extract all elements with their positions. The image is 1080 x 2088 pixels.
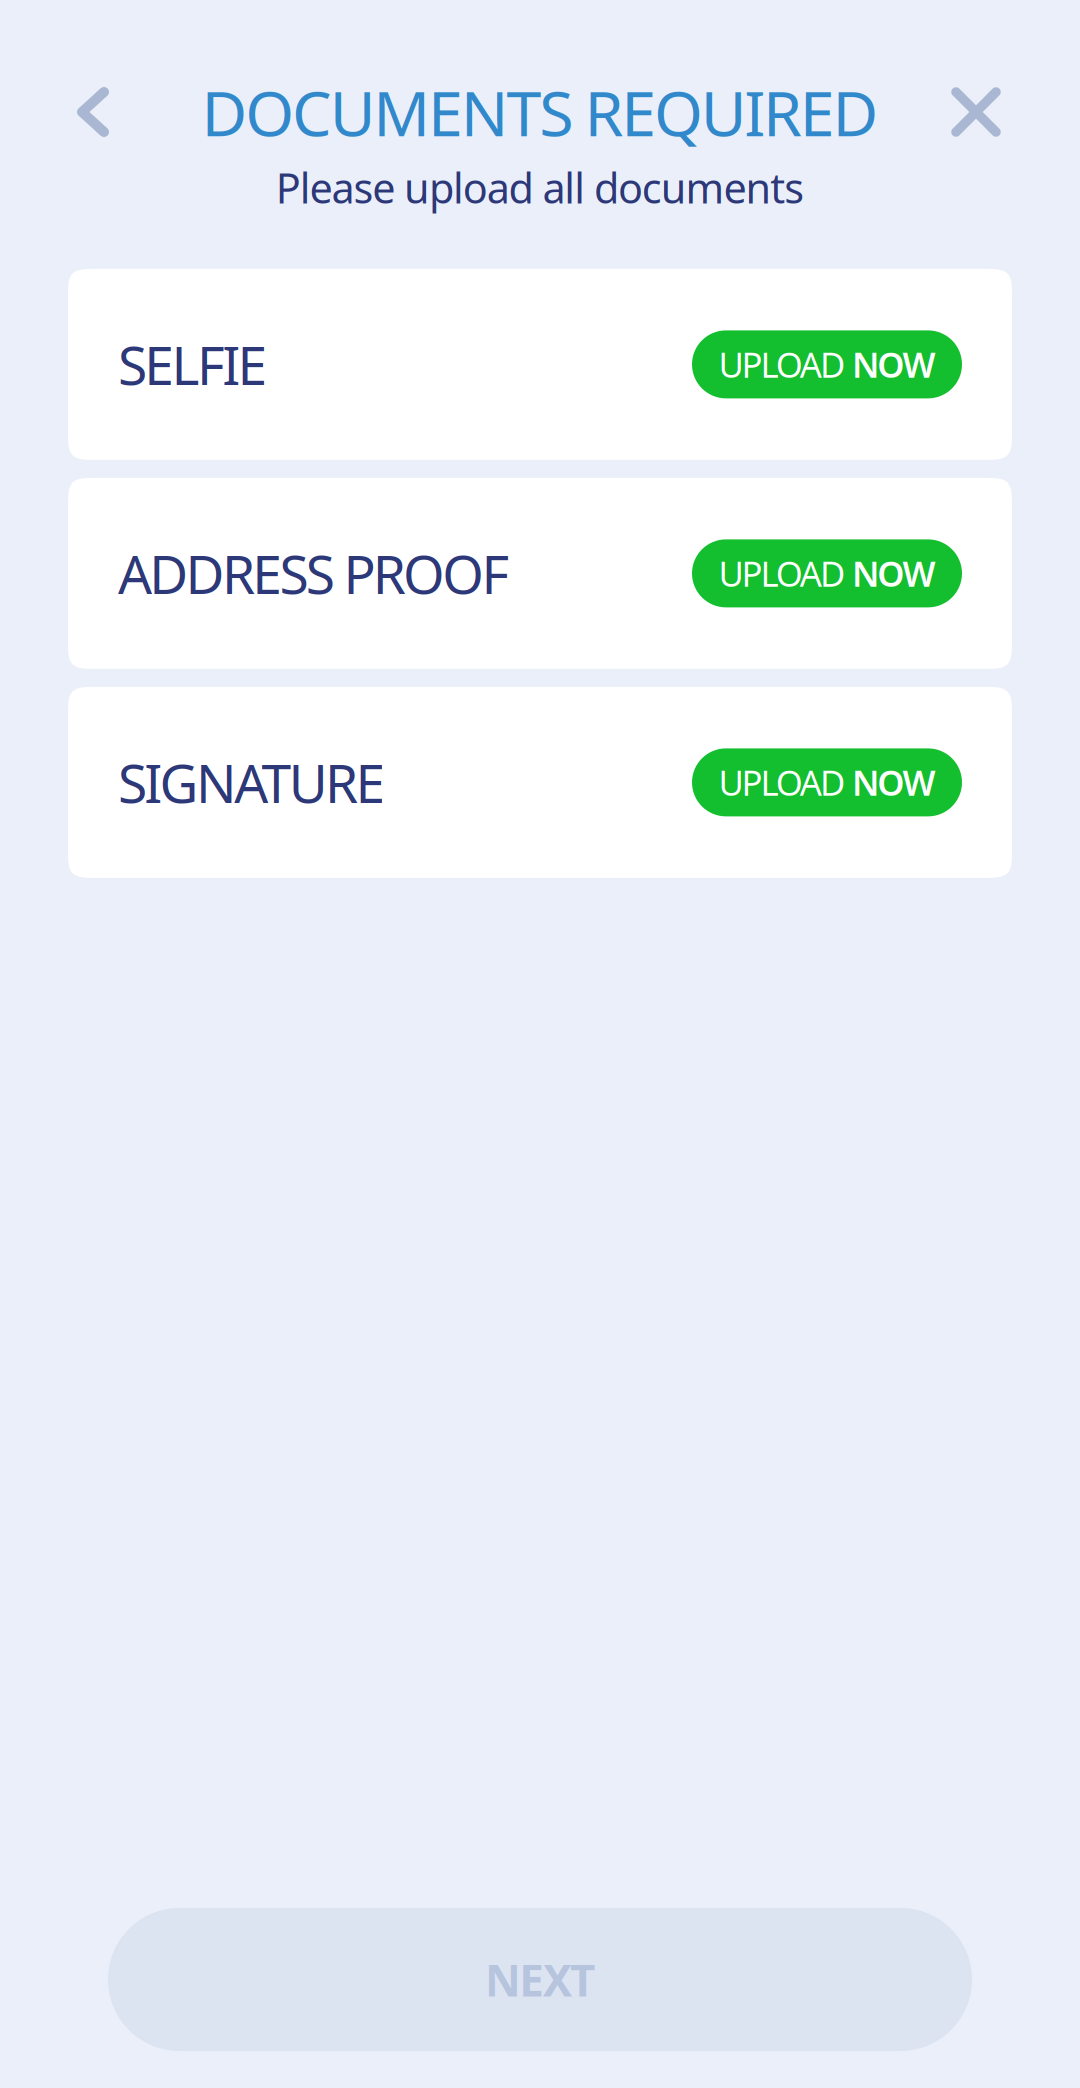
staticText: UPLOAD <box>718 550 852 596</box>
button[interactable]: UPLOAD <box>692 539 962 607</box>
staticText: SELFIE <box>118 329 267 400</box>
staticText: NOW <box>852 550 936 596</box>
button[interactable]: Close <box>921 62 1031 162</box>
staticText: Please upload all documents <box>276 160 804 215</box>
staticText: UPLOAD <box>718 759 852 805</box>
staticText: ADDRESS PROOF <box>118 538 510 609</box>
button[interactable]: UPLOAD <box>692 748 962 816</box>
button[interactable]: Back <box>38 62 148 162</box>
staticText: NOW <box>852 759 936 805</box>
button[interactable]: UPLOAD <box>692 330 962 398</box>
staticText: NEXT <box>485 1950 595 2009</box>
staticText: NOW <box>852 341 936 387</box>
button[interactable]: NEXT <box>108 1908 972 2051</box>
staticText: UPLOAD <box>718 341 852 387</box>
staticText: SIGNATURE <box>118 747 385 818</box>
staticText: DOCUMENTS REQUIRED <box>201 70 878 154</box>
